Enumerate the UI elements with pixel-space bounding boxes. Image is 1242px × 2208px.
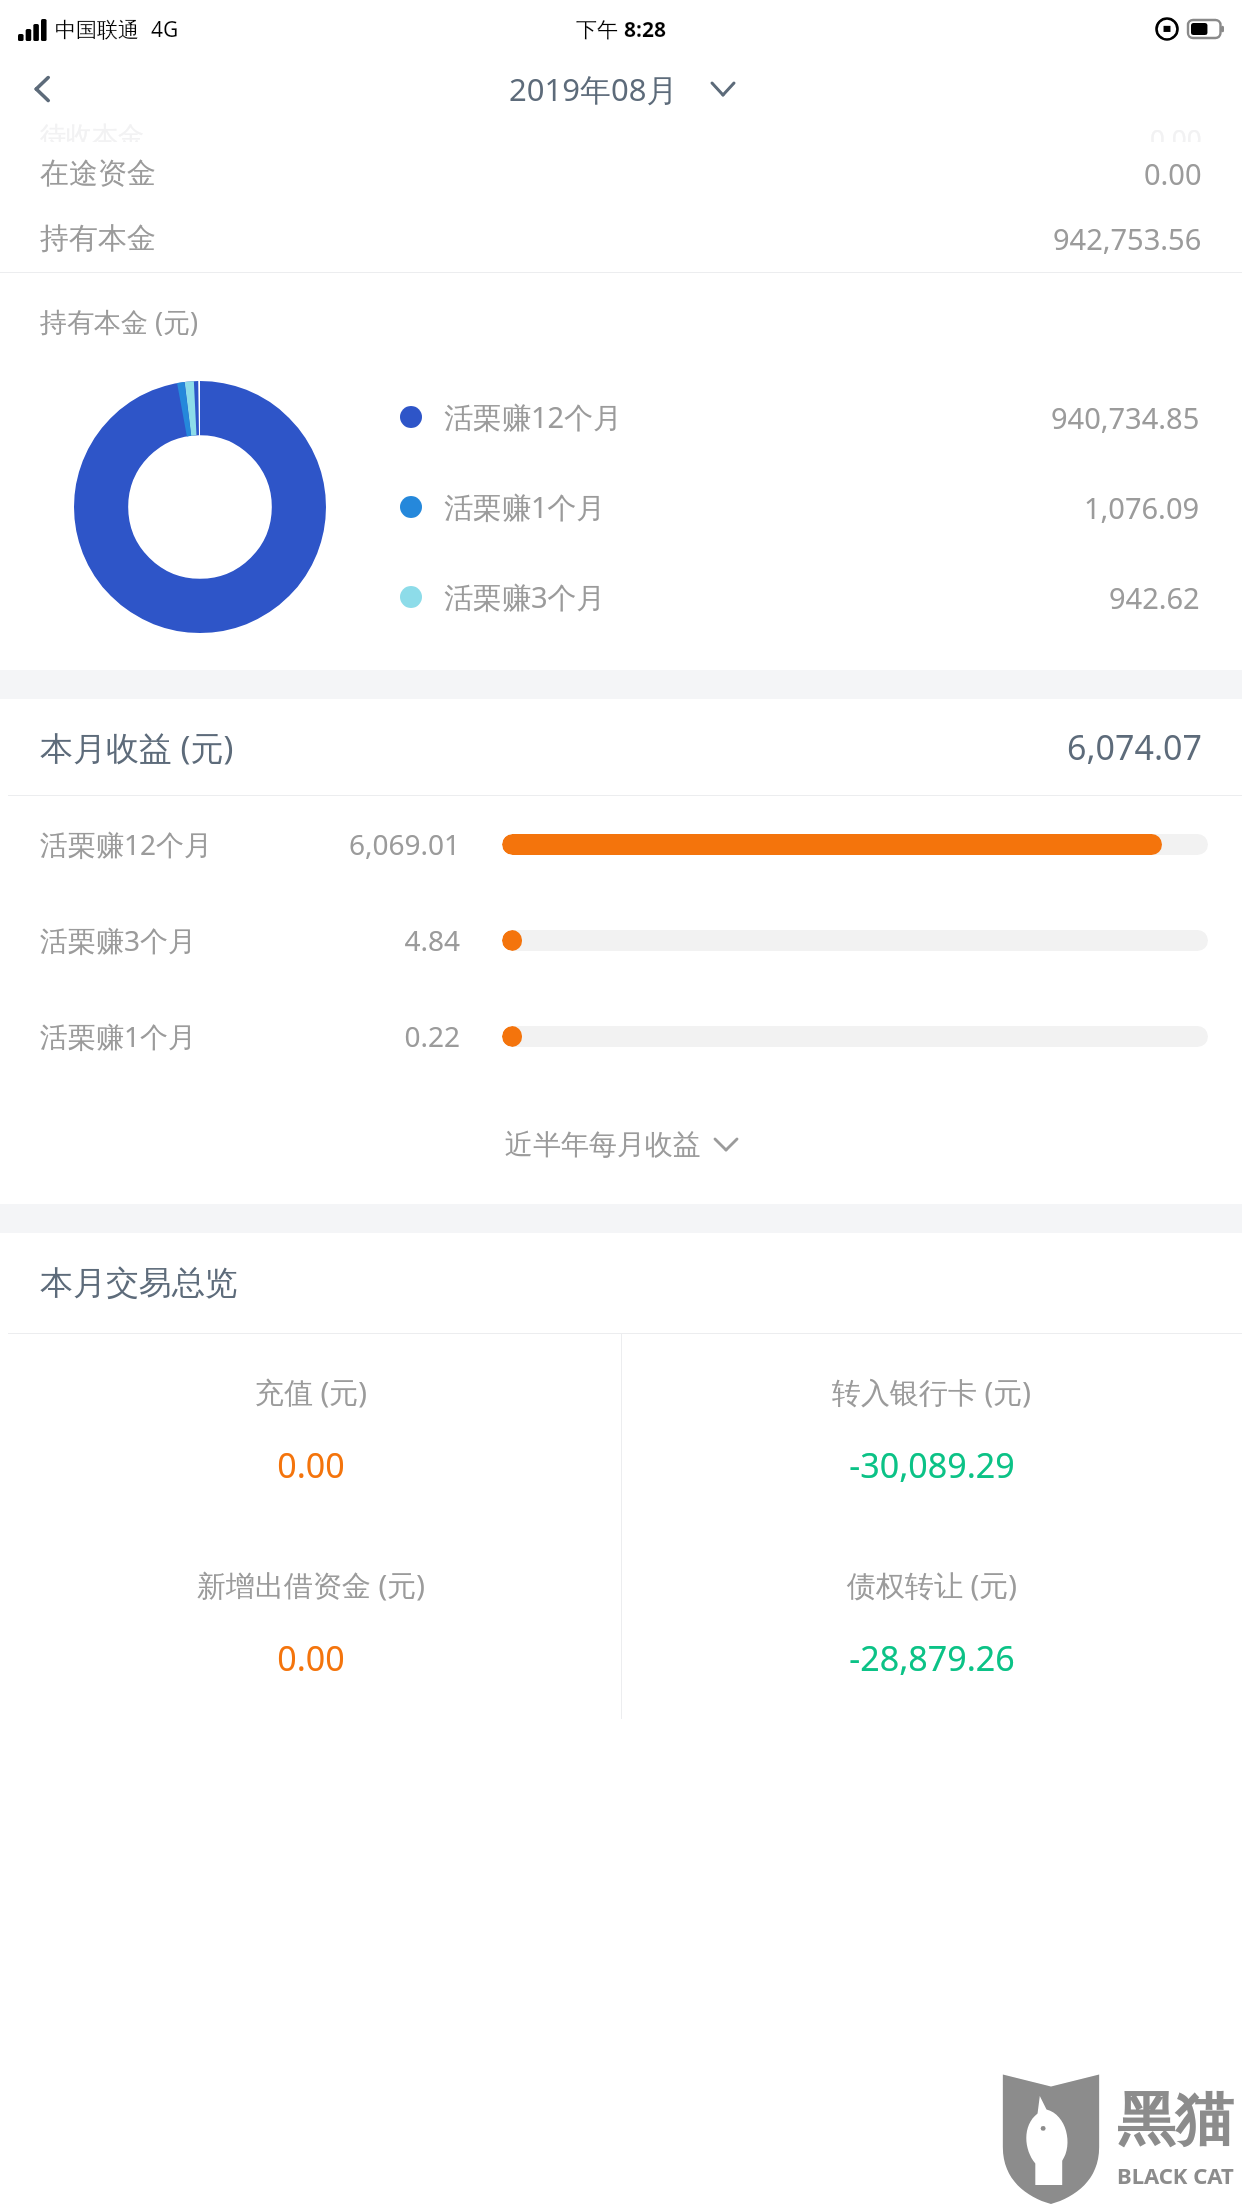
staticText: 6,074.07 — [1067, 724, 1202, 770]
staticText: 活栗赚1个月 — [444, 487, 606, 527]
staticText: 债权转让 (元) — [847, 1565, 1017, 1605]
button[interactable]: 持有本金 — [0, 204, 1242, 272]
staticText: 2019年08月 — [509, 68, 678, 110]
staticText: -30,089.29 — [849, 1442, 1015, 1488]
button[interactable]: 活栗赚12个月 — [400, 372, 1200, 462]
staticText: 0.22 — [270, 1017, 460, 1055]
staticText: 940,734.85 — [1051, 398, 1200, 437]
staticText: 转入银行卡 (元) — [832, 1372, 1031, 1412]
staticText: 下午 — [576, 15, 624, 44]
button[interactable]: 活栗赚1个月 — [400, 462, 1200, 552]
button[interactable]: 近半年每月收益 — [505, 1127, 737, 1162]
staticText: 待收本金 — [40, 120, 144, 142]
staticText: 942,753.56 — [1053, 219, 1202, 258]
staticText: 4.84 — [270, 921, 460, 959]
staticText: 活栗赚12个月 — [444, 397, 623, 437]
button[interactable]: 活栗赚3个月 — [400, 552, 1200, 642]
button[interactable]: 转入银行卡 (元) — [621, 1334, 1242, 1526]
staticText: 本月交易总览 — [40, 1262, 238, 1304]
staticText: 活栗赚1个月 — [40, 1017, 270, 1055]
staticText: 0.00 — [1144, 154, 1202, 193]
staticText: 1,076.09 — [1084, 488, 1200, 527]
button[interactable]: 活栗赚3个月 — [0, 892, 1242, 988]
staticText: 在途资金 — [40, 155, 156, 192]
staticText: 充值 (元) — [255, 1372, 367, 1412]
button[interactable]: 活栗赚12个月 — [0, 796, 1242, 892]
button[interactable]: 在途资金 — [0, 142, 1242, 204]
staticText: 0.00 — [1150, 120, 1202, 142]
staticText: 8:28 — [624, 15, 666, 44]
button[interactable]: 债权转让 (元) — [621, 1526, 1242, 1719]
staticText: 近半年每月收益 — [505, 1127, 701, 1162]
staticText: 新增出借资金 (元) — [197, 1565, 425, 1605]
button[interactable]: 充值 (元) — [0, 1334, 621, 1526]
staticText: 0.00 — [277, 1442, 345, 1488]
staticText: 942.62 — [1109, 578, 1200, 617]
staticText: 活栗赚12个月 — [40, 825, 270, 863]
button[interactable]: 活栗赚1个月 — [0, 988, 1242, 1084]
staticText: 活栗赚3个月 — [40, 921, 270, 959]
staticText: 中国联通 — [55, 17, 139, 43]
staticText: 0.00 — [277, 1635, 345, 1681]
button[interactable]: 新增出借资金 (元) — [0, 1526, 621, 1719]
staticText: 本月收益 (元) — [40, 725, 234, 770]
staticText: 持有本金 — [40, 220, 156, 257]
button[interactable]: 2019年08月 — [509, 68, 734, 110]
staticText: 4G — [151, 15, 179, 44]
staticText: 持有本金 (元) — [40, 303, 199, 340]
staticText: -28,879.26 — [849, 1635, 1015, 1681]
button[interactable]: 本月收益 (元) — [0, 699, 1242, 795]
staticText: 黑猫 — [1117, 2083, 1233, 2156]
staticText: 6,069.01 — [270, 825, 460, 863]
staticText: 活栗赚3个月 — [444, 577, 606, 617]
staticText: BLACK CAT — [1117, 2160, 1234, 2190]
button[interactable]: Back — [12, 58, 74, 120]
